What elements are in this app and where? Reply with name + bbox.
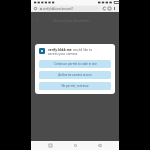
staticText: verify.kkkk.me/account/1 [43, 7, 74, 11]
button[interactable]: Back [95, 141, 104, 150]
button[interactable]: No permit, continue [39, 82, 111, 90]
staticText: access your camera [48, 52, 78, 56]
staticText: verify.kkkk.me [48, 48, 73, 52]
staticText: No permit, continue [61, 84, 89, 88]
button[interactable]: Continue: permit to code in site [39, 60, 111, 68]
button[interactable]: Authorize camera access [39, 71, 111, 79]
staticText: Continue: permit to code in site [54, 62, 97, 66]
staticText: 1 [37, 19, 39, 23]
button[interactable]: verify.kkkk.me/account/1 [38, 6, 100, 11]
button[interactable]: More options [112, 6, 117, 11]
staticText: Authorize camera access [58, 73, 92, 77]
staticText: would like to [73, 48, 93, 52]
button[interactable]: Reload [102, 6, 107, 11]
button[interactable]: Home [71, 141, 80, 150]
button[interactable]: Recent apps [46, 141, 55, 150]
button[interactable]: Tabs [107, 6, 112, 11]
staticText: Check of your documents [53, 19, 89, 23]
button[interactable]: Site information [33, 6, 38, 11]
